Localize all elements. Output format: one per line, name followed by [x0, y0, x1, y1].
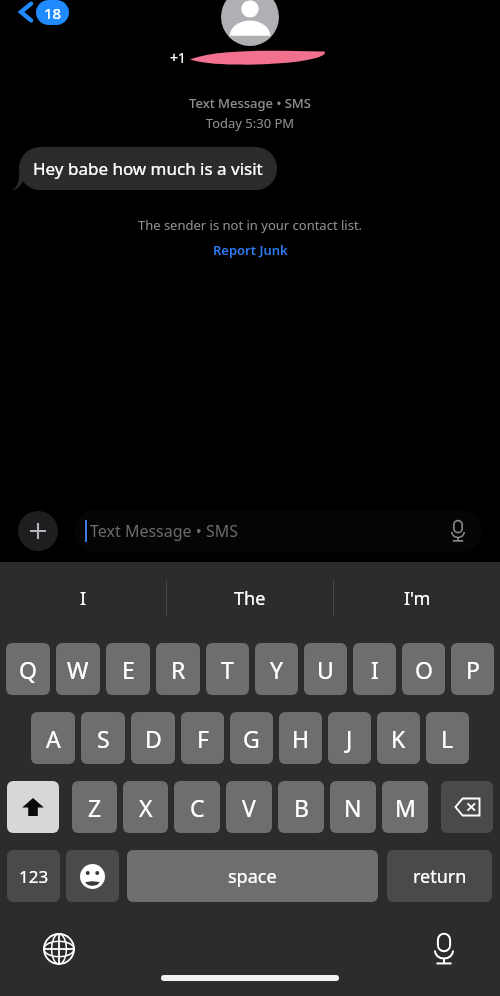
button[interactable]: I: [353, 643, 396, 695]
staticText: Text Message • SMS: [90, 520, 445, 542]
staticText: 18: [44, 3, 62, 23]
button[interactable]: A: [31, 712, 75, 764]
button[interactable]: R: [156, 643, 200, 695]
staticText: space: [228, 864, 277, 889]
staticText: N: [344, 792, 362, 823]
button[interactable]: return: [387, 850, 492, 902]
staticText: The sender is not in your contact list.: [0, 216, 500, 234]
staticText: B: [294, 792, 309, 823]
staticText: Z: [88, 792, 102, 823]
staticText: Text Message • SMS: [0, 94, 500, 112]
button[interactable]: Delete: [441, 781, 493, 833]
staticText: T: [221, 654, 234, 685]
button[interactable]: Emoji: [66, 850, 119, 902]
button[interactable]: space: [127, 850, 378, 902]
button[interactable]: Back, 18 unread: [14, 0, 73, 32]
button[interactable]: Contact details: [170, 0, 330, 66]
button[interactable]: Report Junk: [203, 239, 298, 261]
staticText: H: [292, 723, 310, 754]
staticText: Y: [270, 654, 284, 685]
button[interactable]: I'm: [334, 562, 500, 634]
staticText: J: [346, 723, 353, 754]
staticText: Report Junk: [213, 241, 288, 259]
staticText: G: [243, 723, 260, 754]
staticText: E: [122, 654, 135, 685]
staticText: The: [234, 586, 266, 611]
staticText: P: [466, 654, 480, 685]
staticText: +1: [170, 48, 190, 66]
staticText: Today 5:30 PM: [0, 114, 500, 132]
button[interactable]: P: [451, 643, 494, 695]
staticText: C: [190, 792, 205, 823]
button[interactable]: Text Message • SMS: [74, 510, 482, 552]
button[interactable]: Dictation: [425, 930, 463, 968]
button[interactable]: V: [226, 781, 272, 833]
staticText: I: [371, 654, 379, 685]
staticText: Q: [19, 654, 37, 685]
button[interactable]: Shift: [7, 781, 59, 833]
button[interactable]: E: [106, 643, 150, 695]
staticText: A: [46, 723, 61, 754]
button[interactable]: Switch keyboard: [40, 930, 78, 968]
button[interactable]: Hey babe how much is a visit: [19, 147, 277, 190]
staticText: V: [242, 792, 256, 823]
staticText: U: [317, 654, 334, 685]
button[interactable]: T: [206, 643, 249, 695]
button[interactable]: N: [330, 781, 376, 833]
button[interactable]: Z: [72, 781, 117, 833]
button[interactable]: Q: [6, 643, 50, 695]
button[interactable]: S: [81, 712, 125, 764]
button[interactable]: C: [174, 781, 220, 833]
staticText: O: [415, 654, 433, 685]
staticText: L: [441, 723, 454, 754]
staticText: W: [67, 654, 89, 685]
staticText: R: [171, 654, 186, 685]
staticText: return: [413, 864, 467, 889]
staticText: 123: [19, 865, 49, 888]
staticText: I'm: [404, 586, 431, 611]
button[interactable]: X: [123, 781, 168, 833]
button[interactable]: The: [167, 562, 333, 634]
button[interactable]: Add attachment: [18, 511, 58, 551]
staticText: F: [197, 723, 209, 754]
staticText: K: [391, 723, 406, 754]
staticText: S: [97, 723, 110, 754]
button[interactable]: B: [278, 781, 324, 833]
button[interactable]: J: [328, 712, 371, 764]
button[interactable]: O: [402, 643, 445, 695]
button[interactable]: G: [230, 712, 273, 764]
staticText: M: [395, 792, 416, 823]
button[interactable]: L: [426, 712, 469, 764]
button[interactable]: Dictate: [445, 518, 471, 544]
button[interactable]: 123: [7, 850, 60, 902]
staticText: Hey babe how much is a visit: [33, 157, 263, 180]
staticText: I: [80, 586, 87, 611]
button[interactable]: K: [377, 712, 420, 764]
button[interactable]: D: [131, 712, 175, 764]
button[interactable]: W: [56, 643, 100, 695]
button[interactable]: M: [382, 781, 428, 833]
button[interactable]: H: [279, 712, 322, 764]
button[interactable]: F: [181, 712, 224, 764]
button[interactable]: I: [0, 562, 166, 634]
button[interactable]: U: [304, 643, 347, 695]
staticText: X: [139, 792, 153, 823]
button[interactable]: Y: [255, 643, 298, 695]
staticText: D: [145, 723, 162, 754]
